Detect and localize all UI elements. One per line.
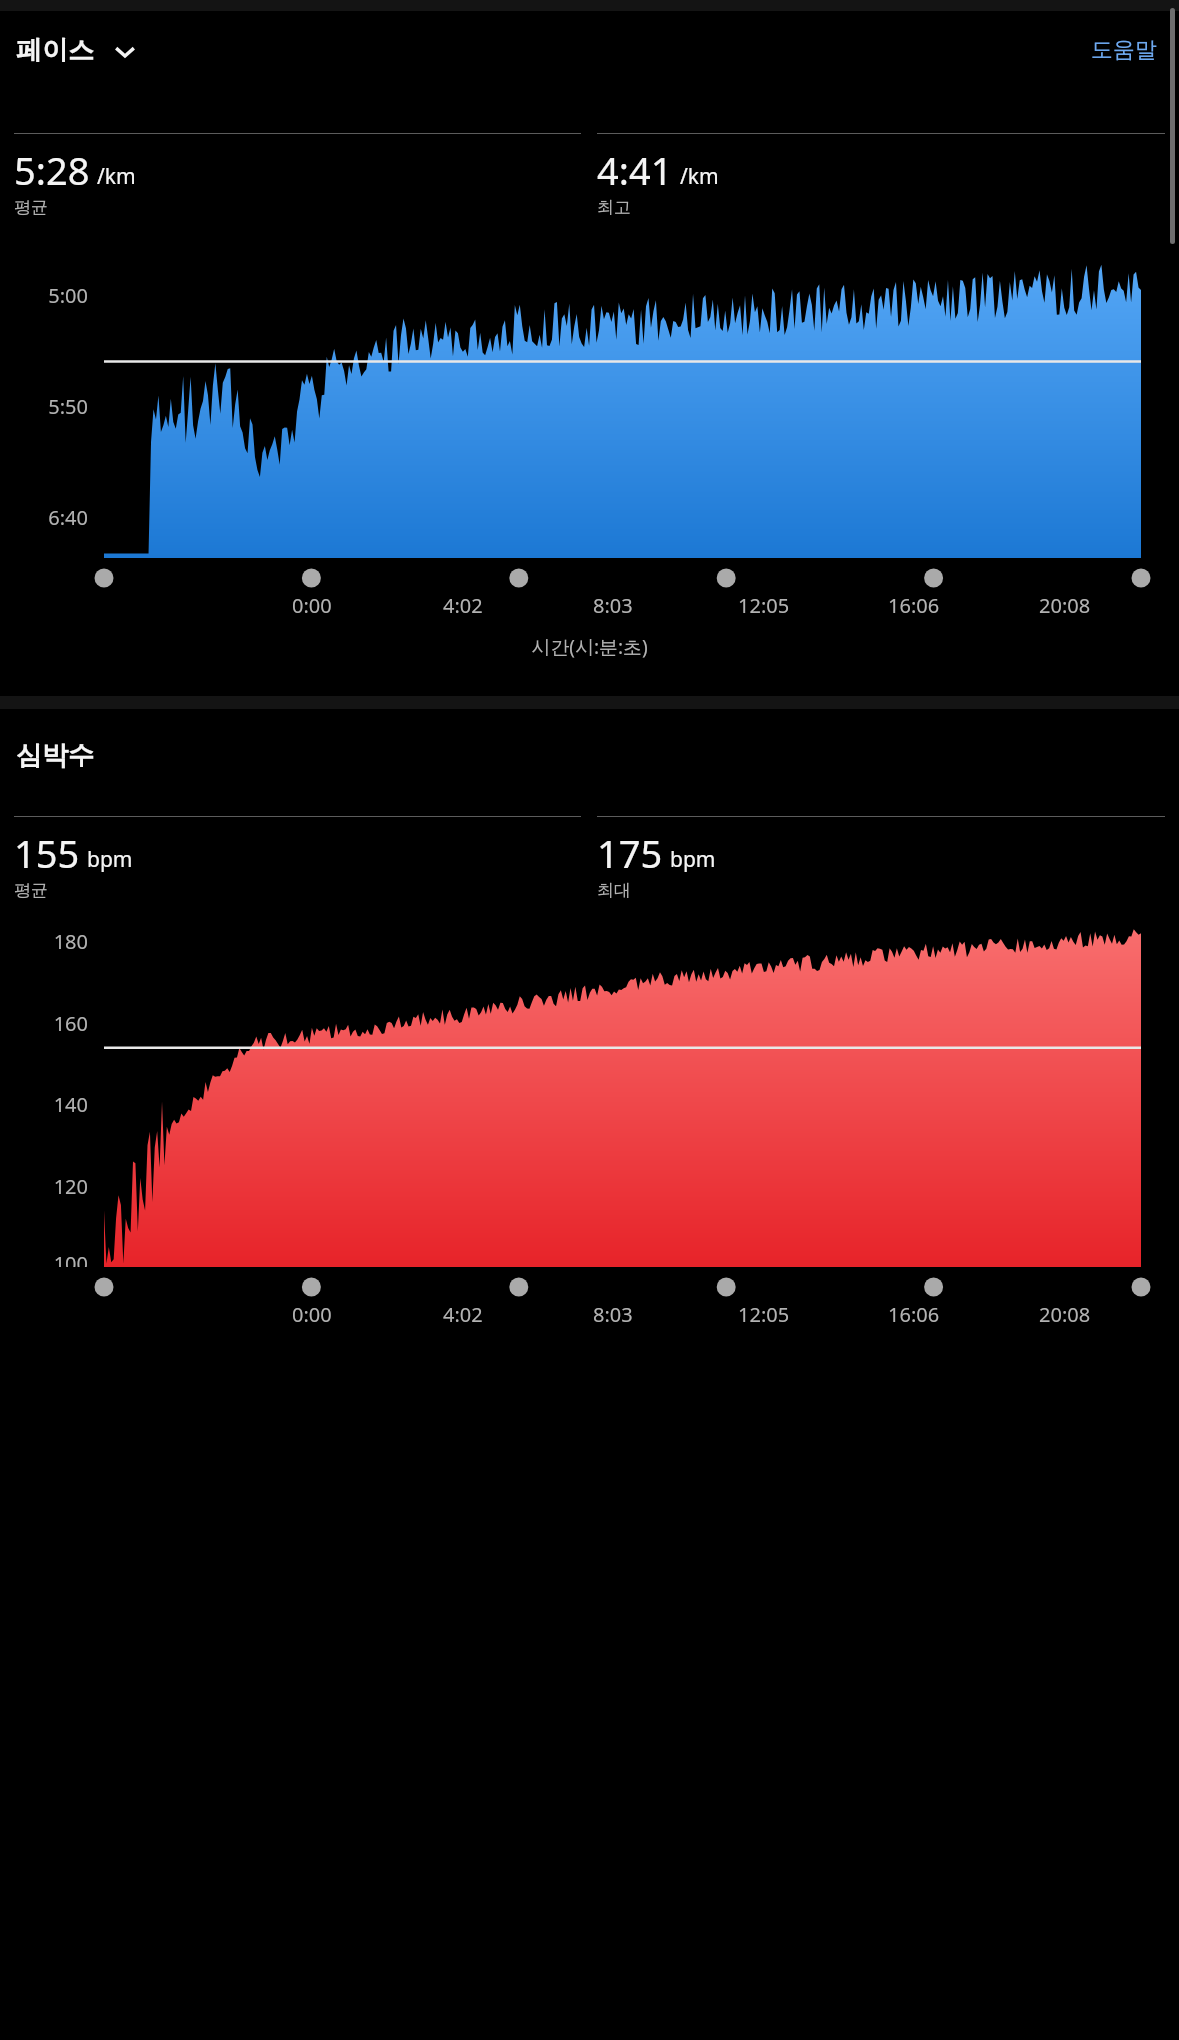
staticText: 20:08 [1039, 592, 1091, 619]
staticText: 도움말 [1091, 36, 1157, 64]
staticText: 8:03 [593, 1301, 633, 1328]
staticText: bpm [670, 845, 716, 874]
staticText: 160 [0, 1010, 88, 1037]
staticText: 12:05 [738, 592, 790, 619]
other: Scroll position [1170, 8, 1175, 244]
button[interactable]: 페이스 [14, 28, 140, 73]
staticText: 100 [0, 1250, 88, 1267]
staticText: 0:00 [292, 1301, 332, 1328]
button[interactable]: 155 [14, 816, 581, 901]
staticText: 심박수 [16, 739, 94, 772]
button[interactable]: 175 [597, 816, 1165, 901]
staticText: 5:28 [14, 144, 90, 196]
button[interactable]: 도움말 [1083, 30, 1165, 70]
button[interactable]: 4:41 [597, 133, 1165, 218]
staticText: 175 [597, 827, 663, 879]
staticText: /km [97, 162, 136, 191]
staticText: 16:06 [888, 592, 940, 619]
staticText: 4:02 [443, 592, 483, 619]
staticText: bpm [87, 845, 133, 874]
staticText: 최대 [597, 880, 631, 901]
staticText: 평균 [14, 197, 48, 218]
staticText: 6:40 [0, 504, 88, 531]
staticText: 5:50 [0, 393, 88, 420]
staticText: 4:41 [597, 144, 673, 196]
staticText: 5:00 [0, 282, 88, 309]
staticText: 12:05 [738, 1301, 790, 1328]
staticText: 120 [0, 1173, 88, 1200]
staticText: 4:02 [443, 1301, 483, 1328]
staticText: 16:06 [888, 1301, 940, 1328]
staticText: 시간(시:분:초) [0, 634, 1179, 660]
button[interactable]: 5:28 [14, 133, 581, 218]
staticText: 0:00 [292, 592, 332, 619]
staticText: 최고 [597, 197, 631, 218]
staticText: 평균 [14, 880, 48, 901]
staticText: 20:08 [1039, 1301, 1091, 1328]
staticText: /km [680, 162, 719, 191]
staticText: 180 [0, 928, 88, 955]
staticText: 155 [14, 827, 80, 879]
staticText: 페이스 [16, 34, 94, 67]
staticText: 8:03 [593, 592, 633, 619]
staticText: 140 [0, 1091, 88, 1118]
